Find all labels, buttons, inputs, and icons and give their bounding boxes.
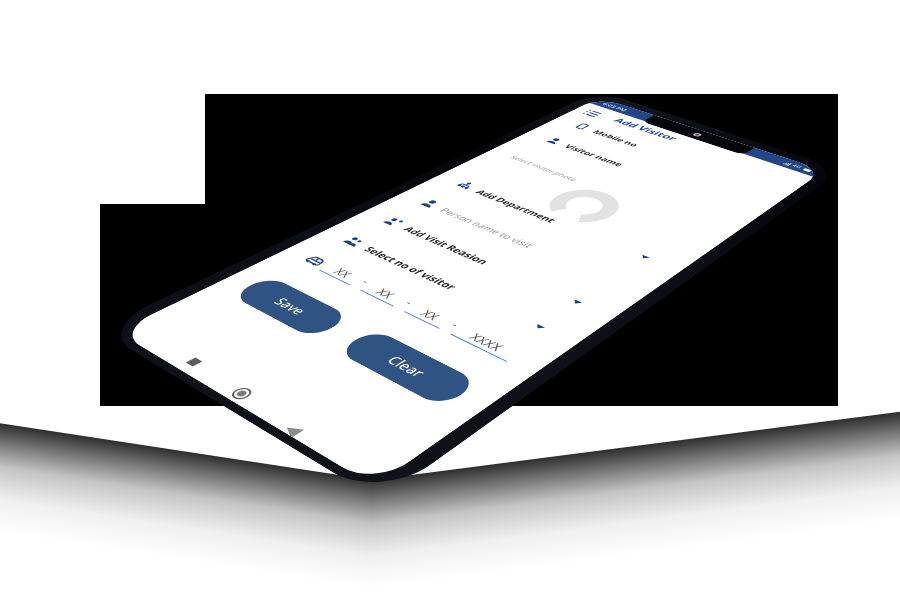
staticText: Select visitor photo bbox=[508, 154, 580, 182]
staticText: Add Visitor bbox=[611, 116, 681, 142]
staticText: XX bbox=[417, 307, 445, 323]
staticText: - bbox=[358, 277, 375, 286]
button[interactable]: Clear bbox=[336, 329, 480, 408]
staticText: Add Department bbox=[473, 188, 560, 224]
button[interactable]: Person name to visit bbox=[390, 186, 659, 303]
staticText: Select no of visitor bbox=[361, 244, 461, 292]
button[interactable]: Menu bbox=[575, 106, 609, 121]
staticText: Clear bbox=[382, 353, 432, 381]
button[interactable]: Back bbox=[275, 418, 312, 441]
staticText: Add Visit Reasion bbox=[400, 224, 493, 266]
staticText: Visitor name bbox=[562, 143, 627, 168]
staticText: - bbox=[447, 319, 465, 330]
staticText: XX bbox=[330, 266, 357, 280]
button[interactable]: Recents bbox=[172, 350, 216, 374]
button[interactable]: Add Visit Reasion bbox=[353, 203, 626, 327]
staticText: XXXX bbox=[466, 330, 509, 354]
button[interactable]: Select no of visitor bbox=[313, 222, 591, 353]
staticText: XX bbox=[372, 286, 400, 301]
staticText: Mobile no bbox=[590, 129, 642, 148]
staticText: 4G bbox=[790, 163, 804, 170]
button[interactable]: Home bbox=[220, 381, 262, 406]
button[interactable]: Visitor name bbox=[518, 127, 771, 221]
button[interactable]: Add Department bbox=[427, 169, 692, 279]
staticText: - bbox=[401, 297, 419, 307]
button[interactable]: Save bbox=[231, 276, 351, 339]
staticText: Person name to visit bbox=[437, 206, 538, 250]
button[interactable]: Mobile no bbox=[547, 113, 796, 203]
staticText: Save bbox=[269, 295, 312, 317]
staticText: 6:03 PM bbox=[601, 102, 630, 112]
